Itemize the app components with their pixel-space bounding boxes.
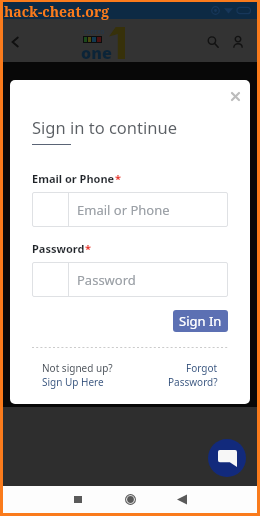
button[interactable]: Home bbox=[118, 487, 142, 511]
button[interactable]: Sign In bbox=[173, 310, 228, 332]
button[interactable]: Password bbox=[32, 262, 228, 297]
button[interactable]: Email or Phone bbox=[32, 192, 228, 227]
staticText: * bbox=[115, 171, 121, 186]
button[interactable]: Chat bbox=[208, 439, 246, 477]
staticText: Password? bbox=[168, 375, 218, 389]
staticText: Password bbox=[77, 271, 136, 289]
button[interactable]: Recents bbox=[66, 487, 90, 511]
staticText: Email or Phone bbox=[77, 201, 170, 219]
staticText: Sign In bbox=[179, 312, 222, 330]
button[interactable]: Forgot bbox=[168, 361, 218, 389]
staticText: Forgot bbox=[186, 361, 218, 375]
staticText: Not signed up? bbox=[42, 361, 113, 375]
button[interactable]: Not signed up? bbox=[42, 361, 113, 389]
staticText: * bbox=[85, 241, 91, 256]
staticText: Sign Up Here bbox=[42, 375, 104, 389]
staticText: SODEXO bbox=[84, 29, 105, 36]
button[interactable]: Back bbox=[3, 22, 27, 62]
button[interactable]: Close bbox=[225, 86, 245, 106]
staticText: Password bbox=[32, 241, 85, 256]
button[interactable]: Search bbox=[201, 30, 225, 54]
staticText: one bbox=[81, 42, 112, 64]
staticText: Sign in to continue bbox=[32, 116, 177, 138]
staticText: Email or Phone bbox=[32, 171, 115, 186]
button[interactable]: Back bbox=[170, 487, 194, 511]
button[interactable]: Account bbox=[226, 30, 250, 54]
staticText: hack-cheat.org bbox=[4, 2, 110, 21]
